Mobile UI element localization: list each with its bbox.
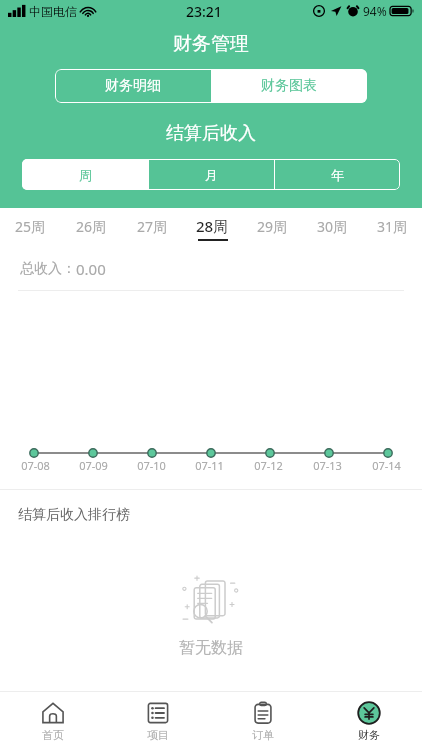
staticText: 财务图表 bbox=[261, 77, 317, 95]
button[interactable]: 28周 bbox=[182, 208, 242, 248]
button[interactable]: 27周 bbox=[122, 208, 182, 248]
staticText: 94% bbox=[363, 3, 387, 19]
staticText: 订单 bbox=[252, 728, 274, 742]
staticText: 结算后收入 bbox=[166, 122, 256, 145]
button[interactable]: 30周 bbox=[302, 208, 362, 248]
button[interactable]: 财务明细 bbox=[55, 69, 211, 103]
staticText: 月 bbox=[205, 167, 218, 183]
button[interactable]: 订单 bbox=[210, 692, 316, 750]
other: 首页 bbox=[41, 701, 65, 725]
staticText: 31周 bbox=[377, 217, 408, 236]
staticText: 财务明细 bbox=[105, 77, 161, 95]
button[interactable]: 25周 bbox=[0, 208, 61, 248]
staticText: 29周 bbox=[257, 217, 288, 236]
button[interactable]: 31周 bbox=[362, 208, 422, 248]
staticText: 23:21 bbox=[186, 2, 222, 21]
staticText: 0.00 bbox=[76, 259, 106, 279]
staticText: 07-08 bbox=[21, 458, 50, 473]
button[interactable]: 财务图表 bbox=[211, 69, 367, 103]
staticText: 07-14 bbox=[372, 458, 401, 473]
staticText: 中国电信 bbox=[29, 4, 77, 19]
staticText: 28周 bbox=[196, 216, 229, 236]
button[interactable]: 29周 bbox=[242, 208, 302, 248]
staticText: 25周 bbox=[15, 217, 46, 236]
button[interactable]: 财务 bbox=[316, 692, 422, 750]
staticText: 年 bbox=[331, 167, 344, 183]
button[interactable]: 首页 bbox=[0, 692, 105, 750]
button[interactable]: 项目 bbox=[105, 692, 210, 750]
staticText: 结算后收入排行榜 bbox=[18, 506, 130, 524]
button[interactable]: 周 bbox=[22, 159, 148, 190]
staticText: 07-13 bbox=[313, 458, 342, 473]
staticText: 26周 bbox=[76, 217, 107, 236]
staticText: 27周 bbox=[137, 217, 168, 236]
staticText: 07-12 bbox=[254, 458, 283, 473]
staticText: 暂无数据 bbox=[179, 638, 243, 658]
staticText: 30周 bbox=[317, 217, 348, 236]
button[interactable]: 26周 bbox=[61, 208, 122, 248]
staticText: 财务管理 bbox=[173, 32, 249, 56]
button[interactable]: 年 bbox=[275, 159, 400, 190]
staticText: 总收入： bbox=[20, 260, 76, 278]
staticText: 周 bbox=[79, 167, 92, 183]
button[interactable]: 月 bbox=[149, 159, 274, 190]
staticText: 07-09 bbox=[79, 458, 108, 473]
other: 项目 bbox=[146, 701, 170, 725]
staticText: 项目 bbox=[147, 728, 169, 742]
staticText: 财务 bbox=[358, 728, 380, 742]
staticText: 07-11 bbox=[195, 458, 224, 473]
staticText: 07-10 bbox=[137, 458, 166, 473]
other: 财务 bbox=[357, 701, 381, 725]
staticText: 首页 bbox=[42, 728, 64, 742]
other: 订单 bbox=[251, 701, 275, 725]
